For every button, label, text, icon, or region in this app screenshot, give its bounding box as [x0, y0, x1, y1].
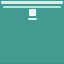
button[interactable]: Action	[28, 18, 37, 20]
button[interactable]	[1, 1, 63, 4]
button[interactable]: Open card	[29, 9, 36, 16]
button[interactable]	[3, 6, 61, 8]
